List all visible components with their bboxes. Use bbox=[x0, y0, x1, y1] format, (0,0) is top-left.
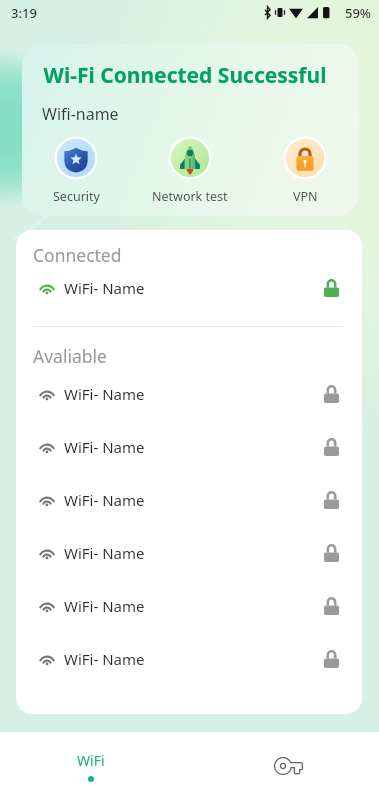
staticText: WiFi- Name bbox=[64, 596, 145, 616]
button[interactable]: Network test bbox=[135, 136, 245, 205]
staticText: 59% bbox=[345, 4, 371, 22]
button[interactable]: WiFi bbox=[30, 732, 151, 800]
button[interactable]: Security bbox=[22, 136, 131, 205]
staticText: VPN bbox=[293, 188, 318, 205]
staticText: WiFi- Name bbox=[64, 490, 145, 510]
button[interactable]: WiFi- Name bbox=[16, 526, 362, 579]
staticText: WiFi- Name bbox=[64, 437, 145, 457]
staticText: Security bbox=[53, 188, 100, 205]
button[interactable]: WiFi- Name bbox=[16, 367, 362, 420]
staticText: Connected bbox=[33, 243, 122, 267]
button[interactable]: WiFi- Name bbox=[16, 579, 362, 632]
staticText: Wi-Fi Connected Successful bbox=[22, 61, 353, 90]
button[interactable]: WiFi- Name bbox=[16, 261, 362, 314]
staticText: WiFi- Name bbox=[64, 384, 145, 404]
staticText: WiFi bbox=[77, 751, 105, 770]
staticText: WiFi- Name bbox=[64, 649, 145, 669]
button[interactable]: WiFi- Name bbox=[16, 420, 362, 473]
button[interactable]: VPN bbox=[250, 136, 358, 205]
button[interactable]: Passwords bbox=[228, 732, 349, 800]
button[interactable]: WiFi- Name bbox=[16, 473, 362, 526]
staticText: Avaliable bbox=[33, 344, 107, 368]
button[interactable]: WiFi- Name bbox=[16, 632, 362, 685]
staticText: Wifi-name bbox=[42, 103, 119, 125]
staticText: WiFi- Name bbox=[64, 278, 145, 298]
staticText: 3:19 bbox=[11, 4, 37, 22]
staticText: WiFi- Name bbox=[64, 543, 145, 563]
staticText: Network test bbox=[152, 188, 228, 205]
